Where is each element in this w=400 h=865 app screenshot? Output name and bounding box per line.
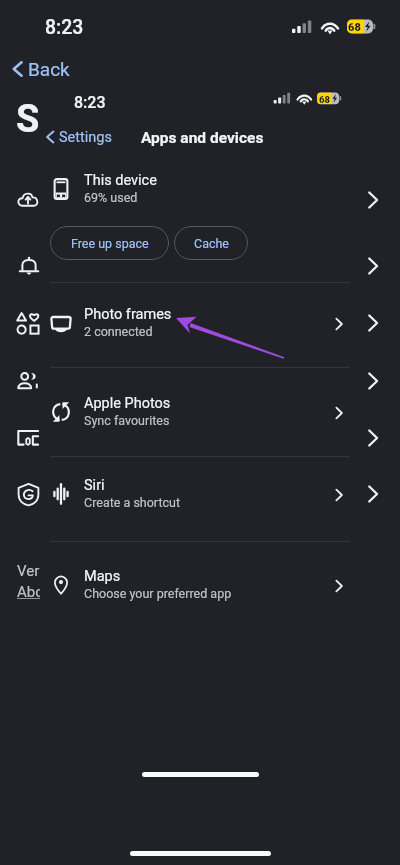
button[interactable]: Open Photo frames [327, 312, 351, 336]
button[interactable]: Back [9, 57, 70, 81]
staticText: Maps [84, 568, 121, 585]
staticText: Create a shortcut [84, 495, 181, 510]
button[interactable]: Cache [174, 226, 248, 260]
button[interactable]: Open [356, 364, 390, 398]
staticText: 68 [319, 94, 331, 105]
staticText: Apple Photos [84, 395, 171, 412]
staticText: Settings [59, 129, 112, 146]
staticText: Sync favourites [84, 413, 170, 428]
staticText: S [16, 97, 40, 142]
button[interactable]: Open [356, 183, 390, 217]
staticText: Siri [84, 477, 105, 494]
staticText: Photo frames [84, 306, 172, 323]
button[interactable]: Open [356, 249, 390, 283]
button[interactable] [40, 166, 350, 212]
staticText: 2 connected [84, 324, 153, 339]
button[interactable]: Open Maps [327, 574, 351, 598]
staticText: Back [28, 58, 70, 80]
staticText: Free up space [71, 236, 149, 251]
staticText: 69% used [84, 190, 138, 205]
staticText: 8:23 [45, 16, 84, 39]
staticText: 8:23 [74, 93, 106, 112]
staticText: This device [84, 172, 157, 189]
button[interactable]: Open [356, 477, 390, 511]
staticText: Version [17, 562, 40, 580]
button[interactable] [40, 562, 350, 608]
staticText: Choose your preferred app [84, 586, 232, 601]
button[interactable] [40, 389, 350, 435]
button[interactable]: Open Siri [327, 483, 351, 507]
button[interactable]: Free up space [50, 226, 169, 260]
button[interactable]: Open [356, 306, 390, 340]
button[interactable] [40, 471, 350, 517]
staticText: Apps and devices [141, 129, 264, 147]
button[interactable] [40, 300, 350, 346]
button[interactable]: Open Apple Photos [327, 401, 351, 425]
button[interactable]: Settings [44, 128, 112, 146]
staticText: Cache [194, 236, 229, 251]
staticText: 68 [348, 21, 361, 34]
button[interactable]: Open [356, 421, 390, 455]
staticText: About [17, 583, 40, 601]
